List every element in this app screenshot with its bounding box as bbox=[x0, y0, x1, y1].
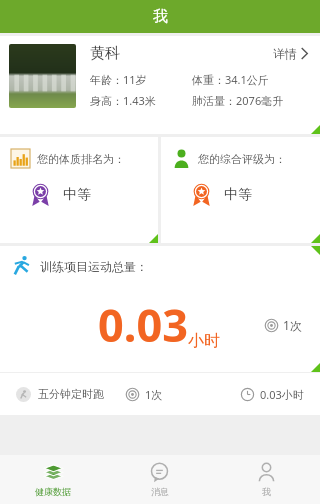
staticText: 黄科 bbox=[90, 44, 120, 63]
staticText: 1次 bbox=[145, 387, 163, 402]
staticText: 我 bbox=[262, 486, 271, 497]
staticText: 0.03 bbox=[98, 294, 188, 355]
staticText: 1次 bbox=[283, 317, 302, 333]
staticText: 0.03小时 bbox=[260, 387, 304, 402]
staticText: 详情 bbox=[273, 46, 297, 61]
staticText: 身高：1.43米 bbox=[90, 93, 192, 108]
staticText: 中等 bbox=[224, 186, 252, 204]
button[interactable]: 消息 bbox=[106, 455, 213, 504]
button[interactable]: 您的综合评级为： bbox=[161, 137, 320, 243]
staticText: 五分钟定时跑 bbox=[38, 387, 104, 401]
button[interactable]: 五分钟定时跑 bbox=[0, 373, 320, 415]
staticText: 健康数据 bbox=[35, 486, 71, 497]
staticText: 您的体质排名为： bbox=[37, 152, 125, 166]
staticText: 训练项目运动总量： bbox=[40, 259, 148, 274]
staticText: 小时 bbox=[188, 331, 220, 351]
button[interactable]: 健康数据 bbox=[0, 455, 106, 504]
staticText: 肺活量：2076毫升 bbox=[192, 93, 310, 108]
staticText: 我 bbox=[153, 7, 168, 26]
button[interactable]: 您的体质排名为： bbox=[0, 137, 158, 243]
staticText: 中等 bbox=[63, 186, 91, 204]
button[interactable] bbox=[9, 44, 76, 108]
button[interactable]: 我 bbox=[213, 455, 320, 504]
staticText: 体重：34.1公斤 bbox=[192, 72, 310, 87]
staticText: 年龄：11岁 bbox=[90, 72, 192, 87]
button[interactable]: 详情 bbox=[271, 44, 310, 63]
staticText: 您的综合评级为： bbox=[198, 152, 286, 166]
staticText: 消息 bbox=[151, 486, 169, 497]
